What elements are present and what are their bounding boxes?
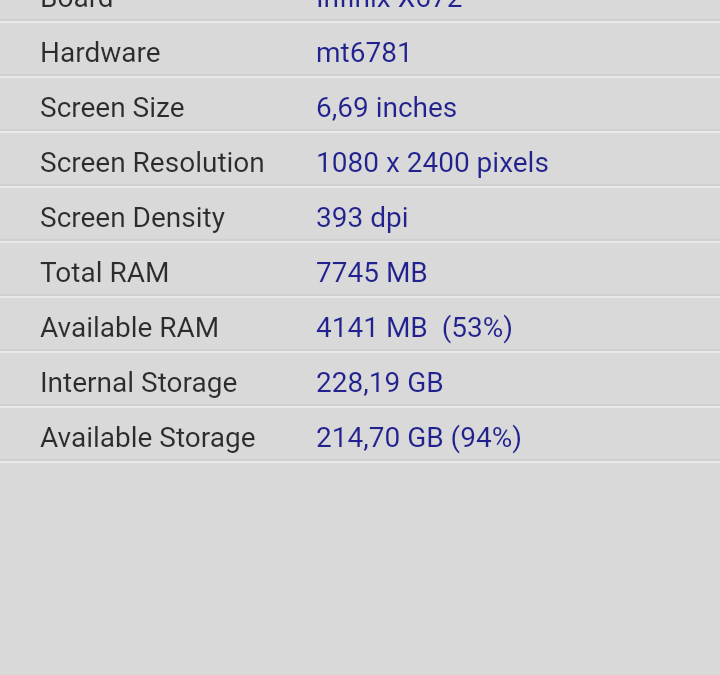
staticText: 393 dpi <box>316 201 409 234</box>
button[interactable]: Screen Density <box>0 188 720 243</box>
button[interactable]: Screen Resolution <box>0 133 720 188</box>
button[interactable]: Screen Size <box>0 78 720 133</box>
button[interactable]: Hardware <box>0 23 720 78</box>
staticText: Board <box>40 0 114 14</box>
staticText: 228,19 GB <box>316 366 444 399</box>
staticText: 6,69 inches <box>316 91 458 124</box>
staticText: 4141 MB (53%) <box>316 311 513 344</box>
button[interactable]: Internal Storage <box>0 353 720 408</box>
staticText: 214,70 GB (94%) <box>316 421 522 454</box>
button[interactable]: Total RAM <box>0 243 720 298</box>
button[interactable]: Board <box>0 0 720 23</box>
staticText: mt6781 <box>316 36 413 69</box>
staticText: Screen Density <box>40 201 225 234</box>
staticText: Total RAM <box>40 256 170 289</box>
staticText: 1080 x 2400 pixels <box>316 146 549 179</box>
staticText: Available Storage <box>40 421 256 454</box>
staticText: Internal Storage <box>40 366 238 399</box>
staticText: Infinix X672 <box>316 0 463 14</box>
staticText: Screen Size <box>40 91 185 124</box>
staticText: Hardware <box>40 36 161 69</box>
staticText: 7745 MB <box>316 256 428 289</box>
staticText: Available RAM <box>40 311 220 344</box>
button[interactable]: Available Storage <box>0 408 720 463</box>
button[interactable]: Available RAM <box>0 298 720 353</box>
staticText: Screen Resolution <box>40 146 265 179</box>
